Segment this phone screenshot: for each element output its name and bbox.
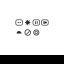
button[interactable]: Block — [24, 29, 31, 36]
button[interactable]: Settings — [32, 29, 40, 36]
button[interactable]: Media — [41, 19, 49, 26]
button[interactable]: Camera — [15, 19, 23, 26]
button[interactable]: Layout — [32, 19, 40, 26]
button[interactable]: Effects — [24, 19, 31, 26]
button[interactable]: Cloud — [15, 29, 23, 36]
